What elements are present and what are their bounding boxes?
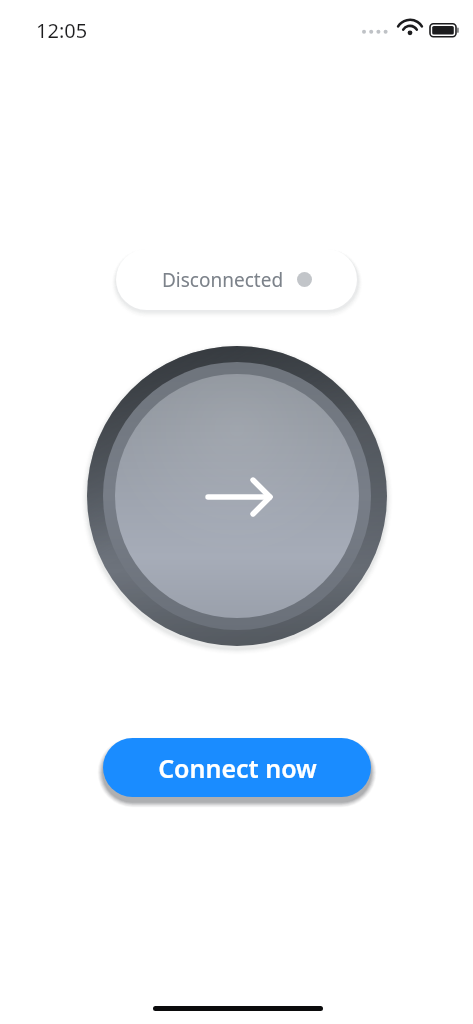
staticText: Connect now: [158, 751, 317, 785]
button[interactable]: Connect: [80, 340, 398, 658]
staticText: 12:05: [36, 17, 88, 44]
staticText: Disconnected: [162, 267, 284, 293]
button[interactable]: Connect now: [103, 738, 371, 797]
button[interactable]: Disconnected: [116, 249, 357, 310]
